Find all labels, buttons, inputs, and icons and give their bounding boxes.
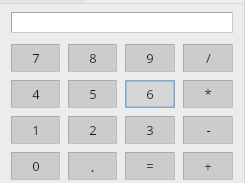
staticText: 0: [32, 157, 40, 175]
button[interactable]: 6: [125, 80, 175, 108]
button[interactable]: =: [125, 152, 175, 180]
button[interactable]: 9: [125, 44, 175, 72]
button[interactable]: 0: [11, 152, 60, 180]
staticText: 9: [146, 49, 154, 67]
button[interactable]: /: [183, 44, 233, 72]
staticText: 8: [89, 49, 97, 67]
staticText: /: [206, 49, 211, 67]
button[interactable]: .: [68, 152, 117, 180]
staticText: *: [204, 85, 212, 103]
staticText: 4: [32, 85, 40, 103]
staticText: -: [206, 121, 211, 139]
button[interactable]: 5: [68, 80, 117, 108]
staticText: .: [90, 156, 95, 176]
button[interactable]: *: [183, 80, 233, 108]
staticText: +: [204, 157, 212, 175]
staticText: 7: [32, 49, 40, 67]
staticText: 5: [89, 85, 97, 103]
button[interactable]: 2: [68, 116, 117, 144]
staticText: 1: [32, 121, 40, 139]
staticText: 2: [89, 121, 97, 139]
button[interactable]: 1: [11, 116, 60, 144]
button[interactable]: 4: [11, 80, 60, 108]
button[interactable]: Calculator display: [11, 12, 233, 33]
button[interactable]: 7: [11, 44, 60, 72]
button[interactable]: +: [183, 152, 233, 180]
staticText: =: [146, 157, 154, 175]
staticText: 3: [146, 121, 154, 139]
button[interactable]: -: [183, 116, 233, 144]
button[interactable]: 3: [125, 116, 175, 144]
staticText: 6: [146, 85, 154, 103]
button[interactable]: 8: [68, 44, 117, 72]
